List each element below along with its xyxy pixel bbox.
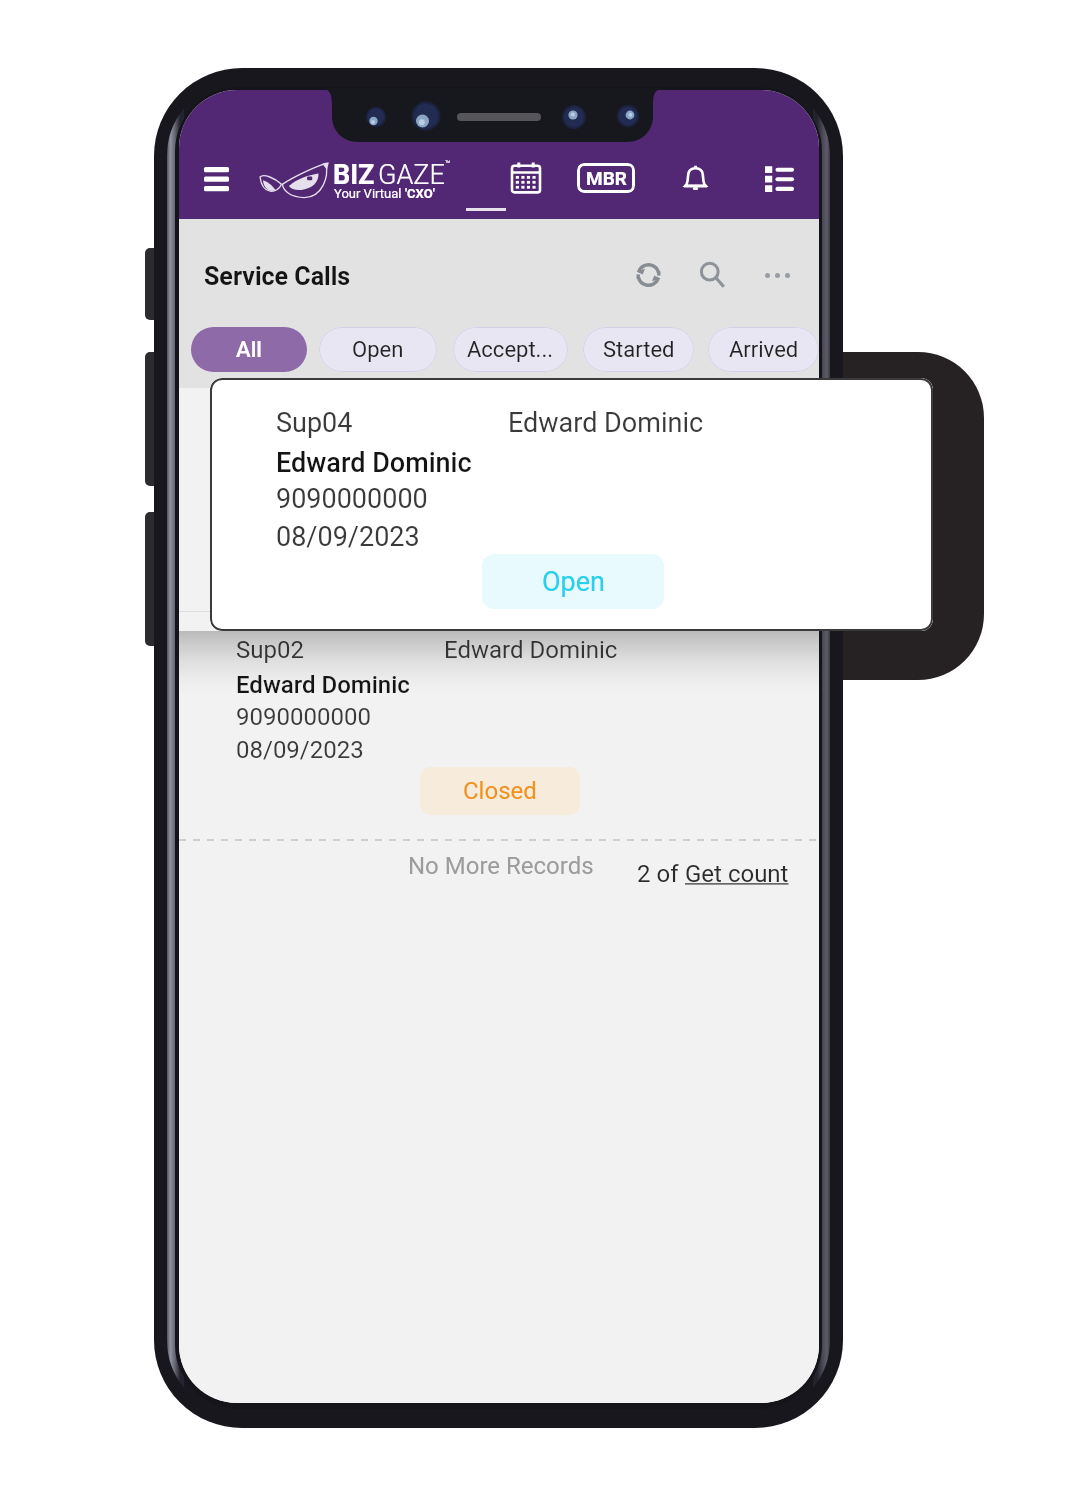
button[interactable]: Started — [583, 327, 694, 372]
staticText: 2 of — [637, 860, 685, 888]
staticText: Sup02 — [236, 636, 304, 664]
button[interactable]: MBR — [577, 163, 635, 193]
staticText: Edward Dominic — [236, 671, 410, 699]
staticText: Sup04 — [276, 407, 353, 439]
button[interactable]: All — [191, 327, 307, 372]
staticText: BIZ — [333, 159, 375, 191]
staticText: Open — [352, 337, 404, 363]
staticText: Started — [603, 337, 675, 363]
staticText: Arrived — [729, 337, 799, 363]
staticText: GAZE — [378, 159, 445, 191]
staticText: Get count — [685, 860, 789, 888]
staticText: 9090000000 — [236, 703, 371, 731]
staticText: Closed — [463, 777, 537, 805]
staticText: Edward Dominic — [276, 447, 472, 479]
button[interactable]: List view — [760, 159, 798, 197]
staticText: 9090000000 — [276, 483, 428, 515]
staticText: MBR — [586, 167, 627, 189]
staticText: ™ — [445, 159, 451, 170]
staticText: Open — [542, 566, 605, 598]
staticText: 'CXO' — [405, 186, 435, 201]
button[interactable]: Open — [319, 327, 437, 372]
button[interactable]: Closed — [420, 767, 580, 815]
button[interactable]: Open — [482, 554, 664, 609]
staticText: All — [236, 337, 262, 363]
staticText: Accept... — [467, 337, 554, 363]
button[interactable]: Arrived — [708, 327, 819, 372]
staticText: No More Records — [408, 852, 594, 880]
staticText: Edward Dominic — [508, 407, 704, 439]
button[interactable]: Notifications — [674, 158, 716, 200]
staticText: Edward Dominic — [444, 636, 618, 664]
staticText: 08/09/2023 — [236, 736, 364, 764]
button[interactable]: More options — [756, 254, 798, 296]
button[interactable]: Accept... — [453, 327, 568, 372]
button[interactable]: Get count — [685, 860, 789, 888]
staticText: Service Calls — [204, 262, 351, 291]
staticText: Your Virtual — [334, 186, 405, 201]
button[interactable]: Menu — [195, 158, 237, 200]
button[interactable]: Calendar — [505, 156, 547, 198]
staticText: 08/09/2023 — [276, 521, 420, 553]
button[interactable]: Search — [691, 254, 733, 296]
button[interactable]: Refresh — [627, 254, 669, 296]
